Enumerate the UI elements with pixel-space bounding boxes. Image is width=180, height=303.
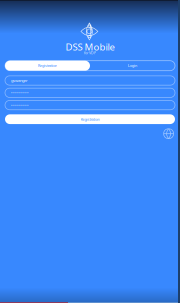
staticText: gswanger [11, 78, 28, 83]
staticText: Registration [38, 63, 57, 68]
staticText: ••••••••• [11, 90, 29, 95]
staticText: DSS Mobile [65, 40, 114, 53]
button[interactable]: Registration [5, 114, 175, 124]
staticText: ••••••••• [11, 102, 29, 108]
staticText: Registration [80, 117, 99, 122]
button[interactable]: Language [163, 128, 174, 139]
staticText: Login [128, 63, 137, 68]
button[interactable]: Login [90, 61, 175, 71]
button[interactable]: Registration [5, 61, 90, 71]
staticText: for VDP [84, 51, 96, 55]
